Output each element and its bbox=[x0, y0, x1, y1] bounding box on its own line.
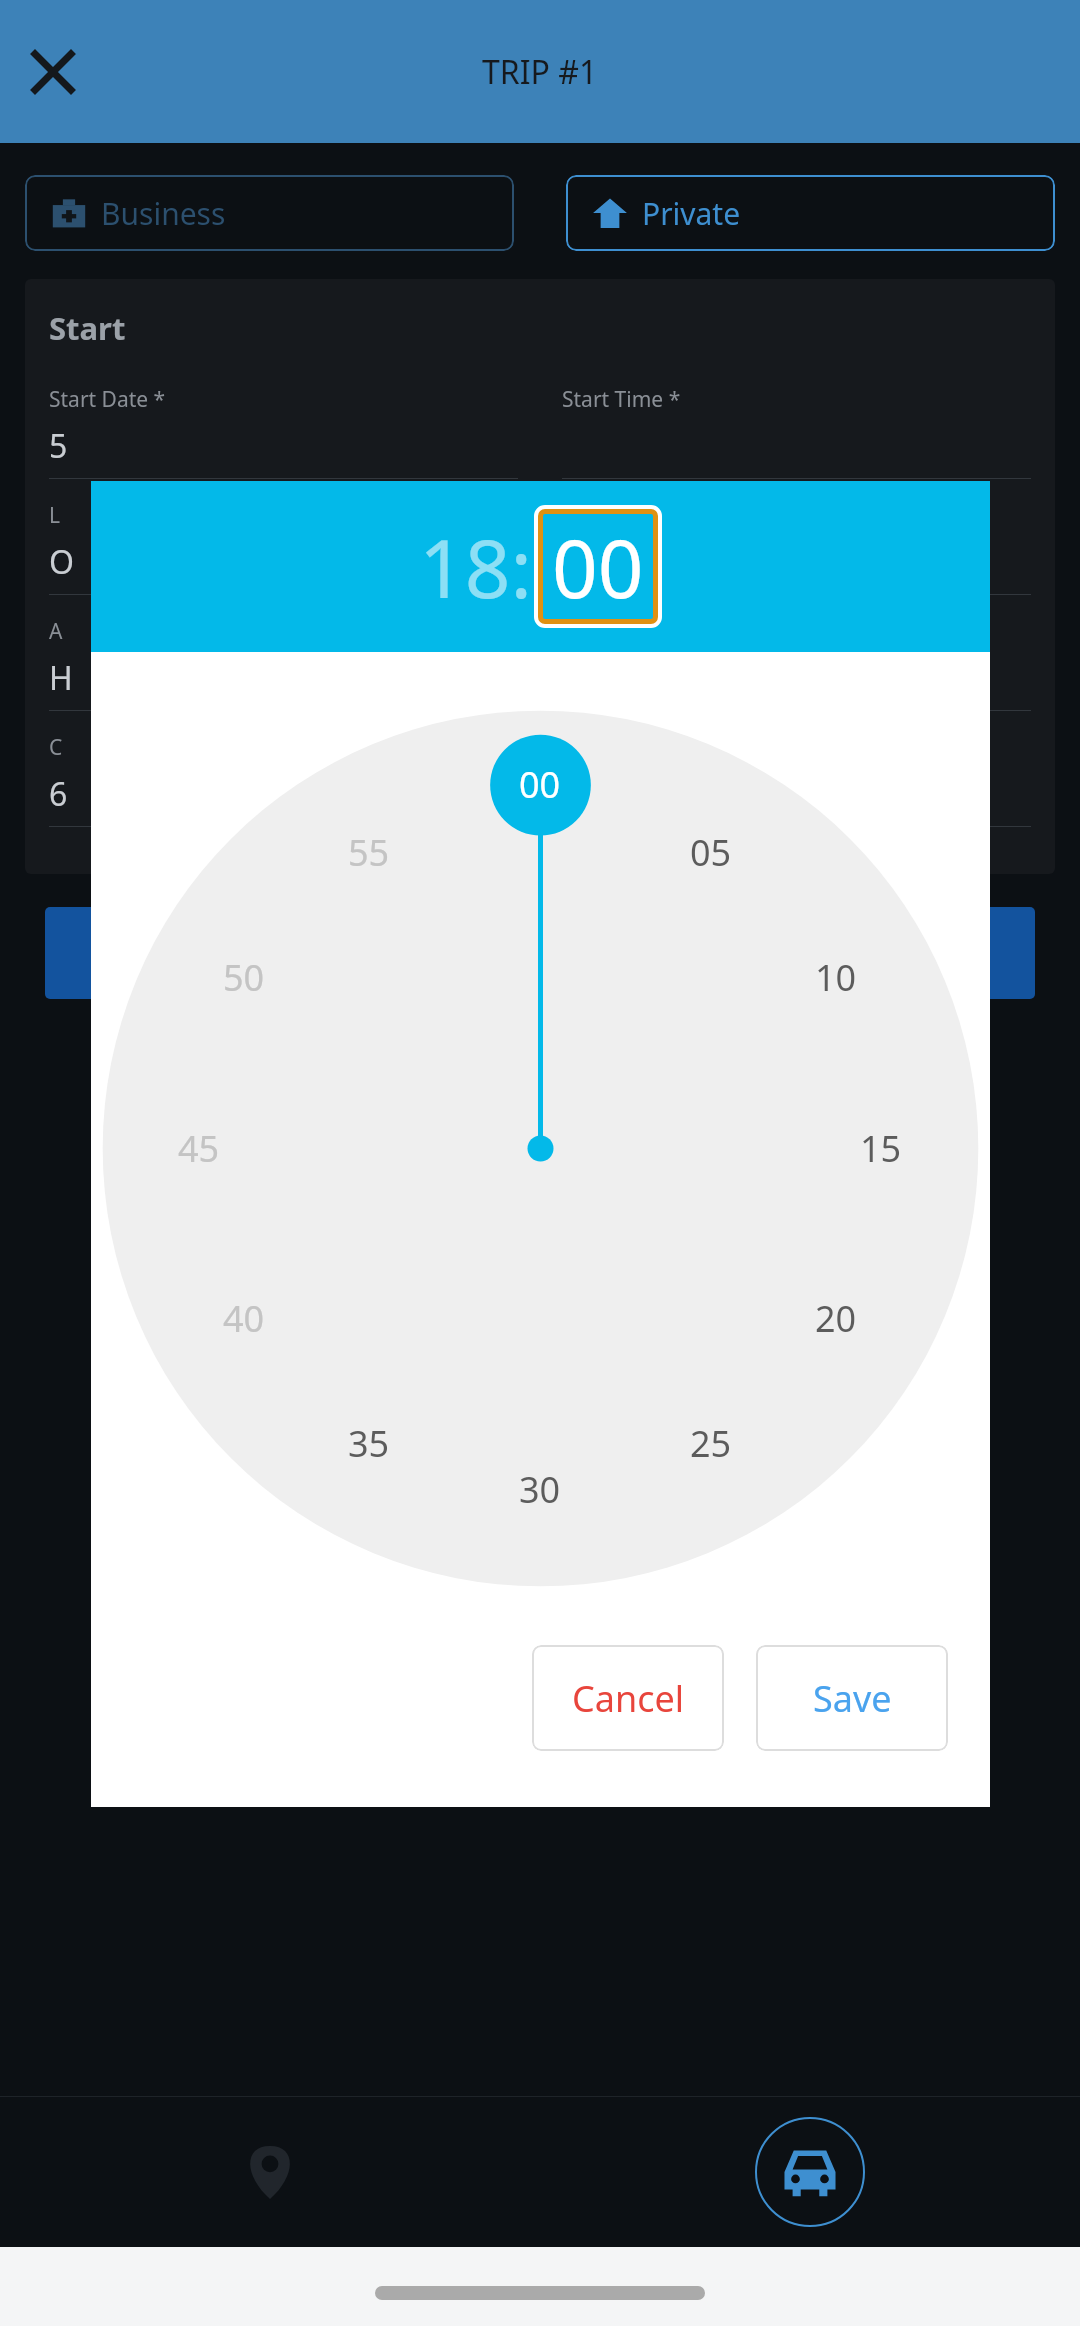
staticText: Private bbox=[642, 193, 741, 234]
staticText: 45 bbox=[178, 1124, 220, 1173]
staticText: A bbox=[49, 617, 63, 646]
button[interactable]: Cancel bbox=[532, 1645, 724, 1751]
staticText: 15 bbox=[860, 1124, 902, 1173]
staticText: Cancel bbox=[572, 1674, 685, 1723]
staticText: L bbox=[49, 501, 61, 530]
button[interactable]: Business bbox=[25, 175, 514, 251]
staticText: Start Date * bbox=[49, 385, 166, 414]
button[interactable]: Private bbox=[566, 175, 1055, 251]
staticText: 00 bbox=[552, 512, 644, 621]
button[interactable]: Close bbox=[14, 33, 92, 111]
staticText: 25 bbox=[690, 1419, 732, 1468]
button[interactable]: Trips bbox=[540, 2097, 1080, 2247]
staticText: 6 bbox=[49, 772, 68, 816]
staticText: 55 bbox=[348, 828, 390, 877]
staticText: 30 bbox=[519, 1465, 561, 1514]
staticText: 05 bbox=[690, 828, 732, 877]
button[interactable] bbox=[45, 907, 1035, 999]
staticText: O bbox=[49, 540, 74, 584]
button[interactable]: Save bbox=[756, 1645, 948, 1751]
staticText: H bbox=[49, 656, 73, 700]
staticText: Save bbox=[813, 1674, 892, 1723]
staticText: 00 bbox=[519, 760, 561, 809]
staticText: Start Time * bbox=[562, 385, 681, 414]
staticText: 10 bbox=[815, 953, 857, 1002]
staticText: 18: bbox=[419, 512, 532, 621]
staticText: TRIP #1 bbox=[482, 50, 598, 94]
staticText: 50 bbox=[223, 953, 265, 1002]
staticText: Business bbox=[101, 193, 226, 234]
staticText: C bbox=[49, 733, 63, 762]
staticText: 35 bbox=[348, 1419, 390, 1468]
button[interactable]: 18: bbox=[419, 512, 532, 621]
staticText: 20 bbox=[815, 1294, 857, 1343]
button[interactable]: 00 bbox=[537, 508, 659, 625]
staticText: 40 bbox=[223, 1294, 265, 1343]
staticText: Start bbox=[49, 307, 126, 349]
staticText: 5 bbox=[49, 424, 68, 468]
